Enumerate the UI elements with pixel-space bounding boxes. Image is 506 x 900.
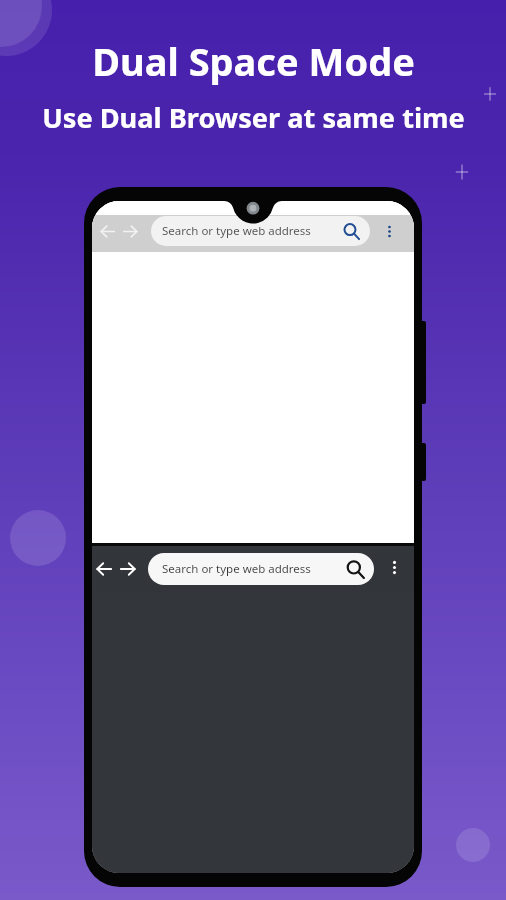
button[interactable]: Back [93,558,114,579]
staticText: Dual Space Mode [92,35,415,87]
button[interactable]: More options [384,557,404,577]
button[interactable]: Search or type web address [148,553,374,585]
button[interactable]: Forward [120,221,141,242]
staticText: Use Dual Browser at same time [42,99,465,136]
staticText: Search or type web address [162,223,342,239]
button[interactable]: Search or type web address [151,216,370,246]
button[interactable]: More options [380,222,399,241]
button[interactable]: Back [97,221,118,242]
staticText: Search or type web address [162,561,345,577]
button[interactable]: Forward [117,558,138,579]
